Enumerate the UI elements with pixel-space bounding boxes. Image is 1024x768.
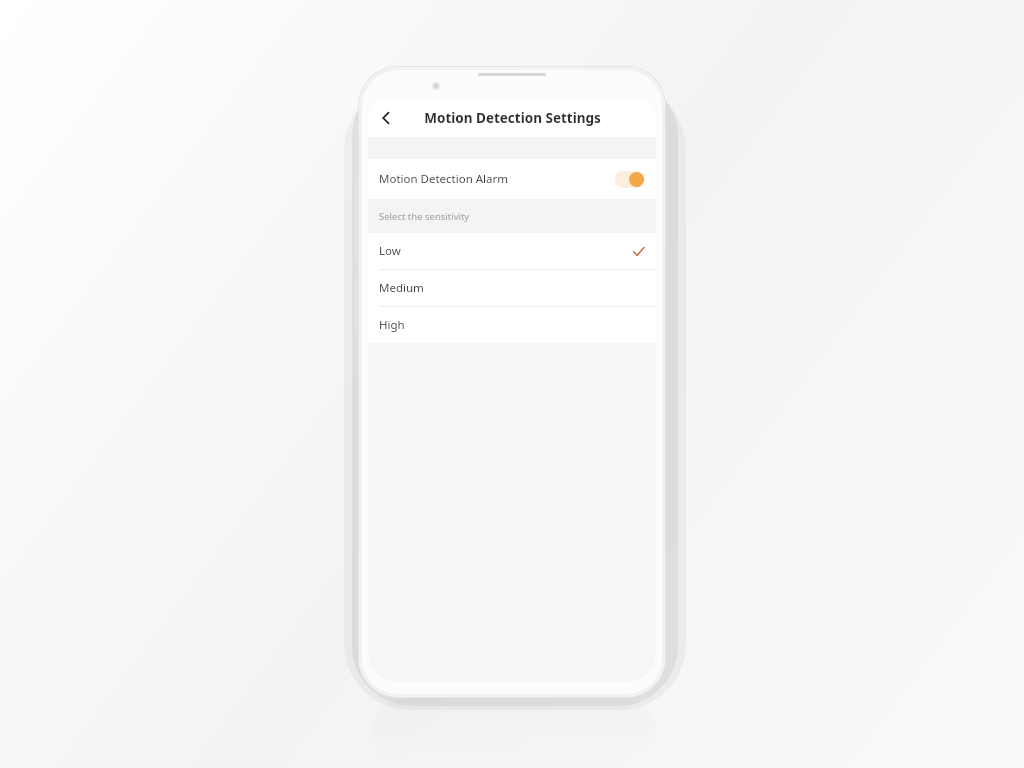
button[interactable]: Medium [368,270,656,306]
button[interactable]: Motion Detection Alarm [368,159,656,199]
button[interactable]: Low [368,233,656,269]
button[interactable]: Motion Detection Alarm toggle [615,171,645,188]
button[interactable]: Back [372,104,400,132]
staticText: Motion Detection Alarm [379,171,509,187]
staticText: Motion Detection Settings [424,109,601,127]
staticText: Select the sensitivity [379,210,470,223]
staticText: Medium [379,280,424,296]
staticText: Low [379,243,401,259]
button[interactable]: High [368,307,656,343]
staticText: High [379,317,405,333]
